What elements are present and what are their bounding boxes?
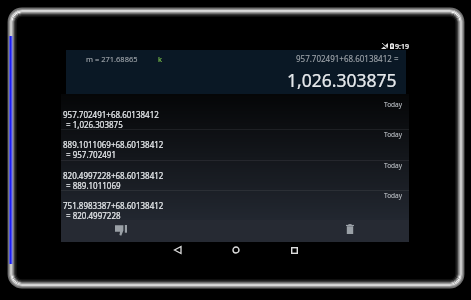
staticText: 889.1011069+68.60138412 (63, 139, 164, 150)
staticText: = 889.1011069 (66, 180, 121, 191)
staticText: Today (384, 130, 403, 139)
staticText: = 1,026.303875 (66, 119, 123, 130)
button[interactable]: Back (166, 239, 188, 261)
staticText: 1,026.303875 (287, 68, 397, 92)
staticText: 957.702491+68.60138412 = (296, 53, 399, 64)
button[interactable]: Today (61, 94, 409, 124)
staticText: 9:19 (395, 42, 409, 52)
staticText: 957.702491+68.60138412 (63, 109, 159, 120)
button[interactable]: Today (61, 155, 409, 185)
staticText: k (158, 54, 163, 64)
button[interactable]: Today (61, 124, 409, 154)
button[interactable]: Recent apps (283, 239, 305, 261)
staticText: Today (384, 191, 403, 200)
staticText: Today (384, 161, 403, 170)
button[interactable]: Home (225, 239, 247, 261)
staticText: Today (384, 100, 403, 109)
button[interactable]: Thumbs down, send feedback (110, 219, 132, 241)
button[interactable]: Clear history (339, 218, 361, 240)
staticText: 751.8983387+68.60138412 (63, 200, 164, 211)
staticText: m = 271.68865 (86, 54, 138, 64)
staticText: = 820.4997228 (66, 210, 121, 221)
button[interactable]: Today (61, 185, 409, 215)
staticText: = 957.702491 (66, 149, 116, 160)
staticText: 820.4997228+68.60138412 (63, 170, 164, 181)
